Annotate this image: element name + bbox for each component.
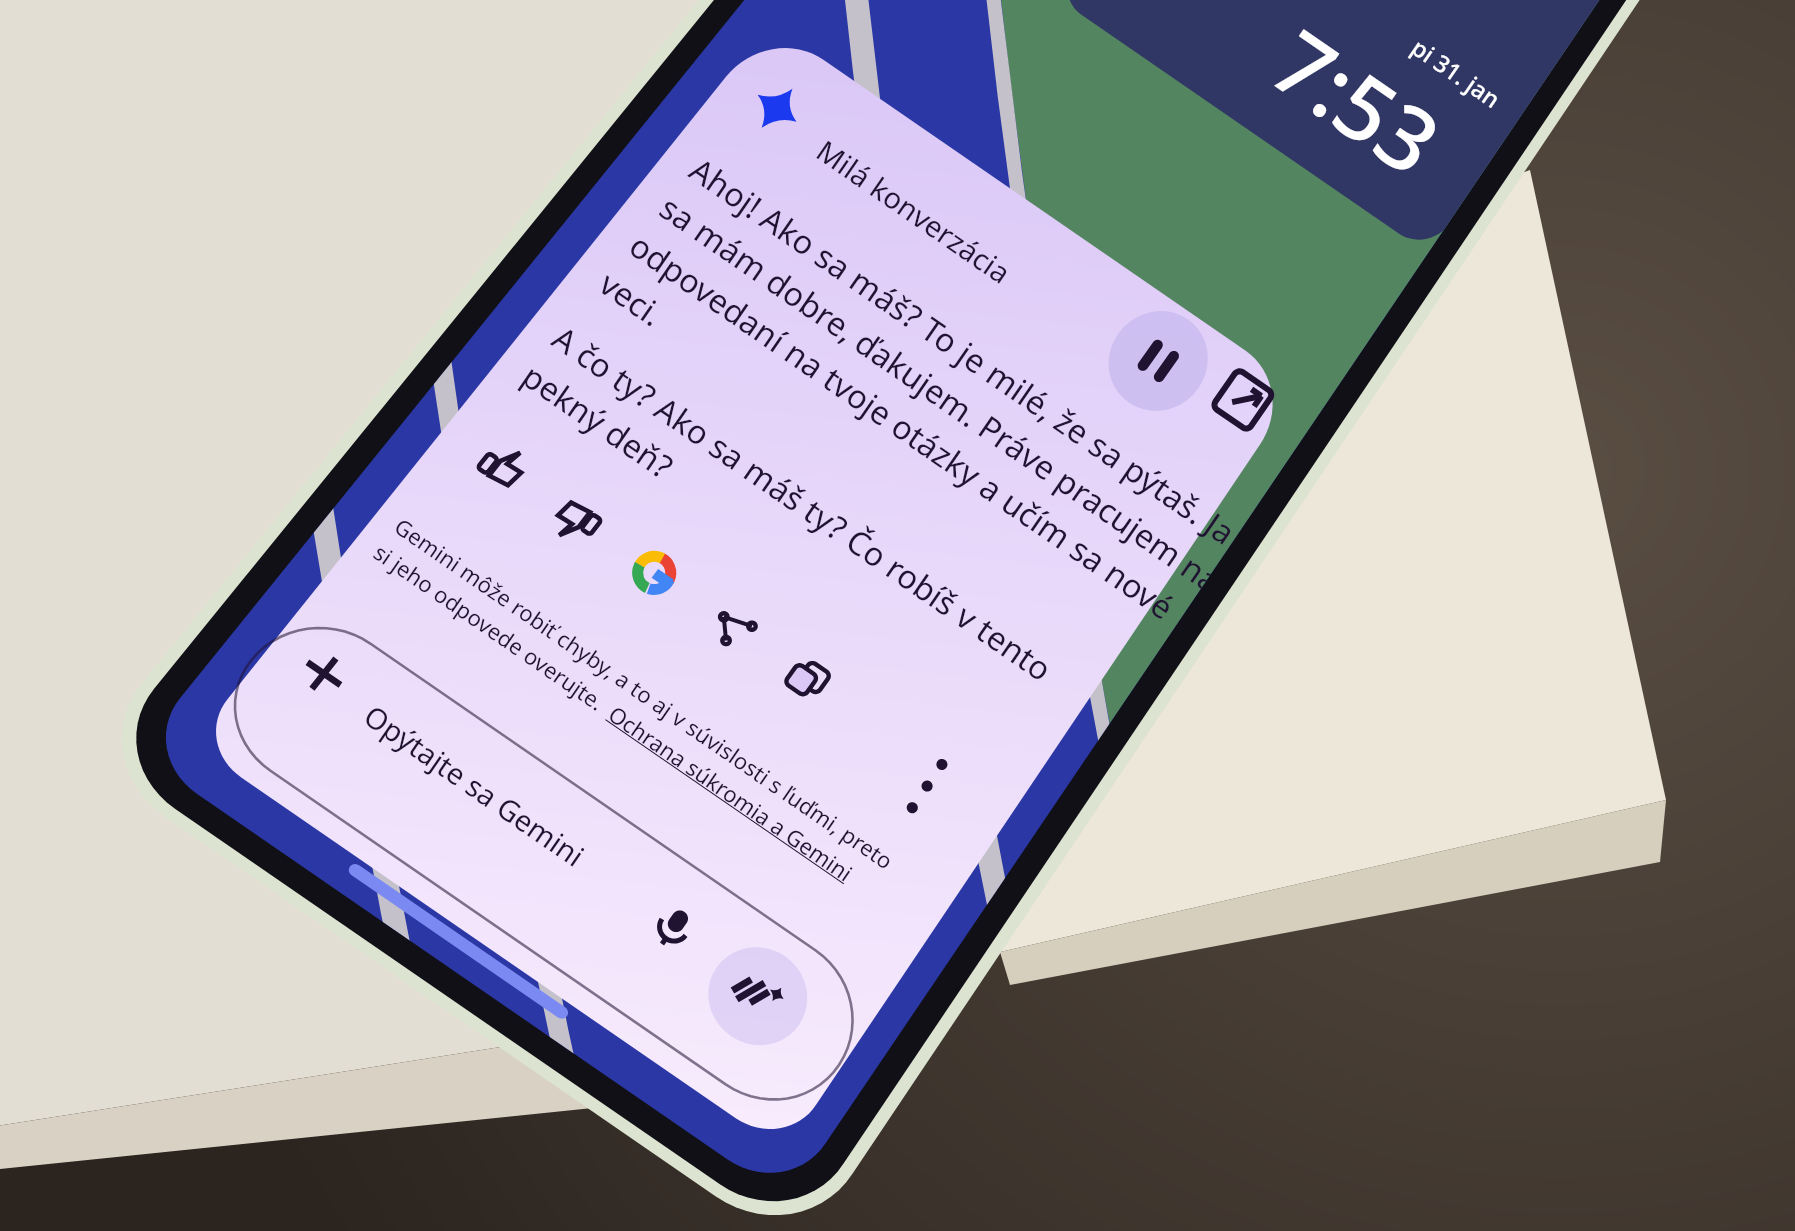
button[interactable]: Expand [1208,365,1276,434]
button[interactable]: Copy [772,645,841,713]
button[interactable]: More options [898,735,972,812]
button[interactable]: Share [697,594,767,662]
button[interactable]: Bad response [542,488,613,555]
button[interactable]: Google Search [619,540,689,608]
button[interactable]: Opýtajte sa Gemini [205,599,885,1132]
button[interactable]: Gemini Live [691,931,823,1062]
button[interactable]: Pause reading [1085,290,1224,427]
button[interactable]: Add attachment [286,640,359,708]
button[interactable]: Voice input [638,891,709,960]
button[interactable]: Good response [465,435,536,502]
button[interactable]: Clock widget [1051,0,1641,255]
